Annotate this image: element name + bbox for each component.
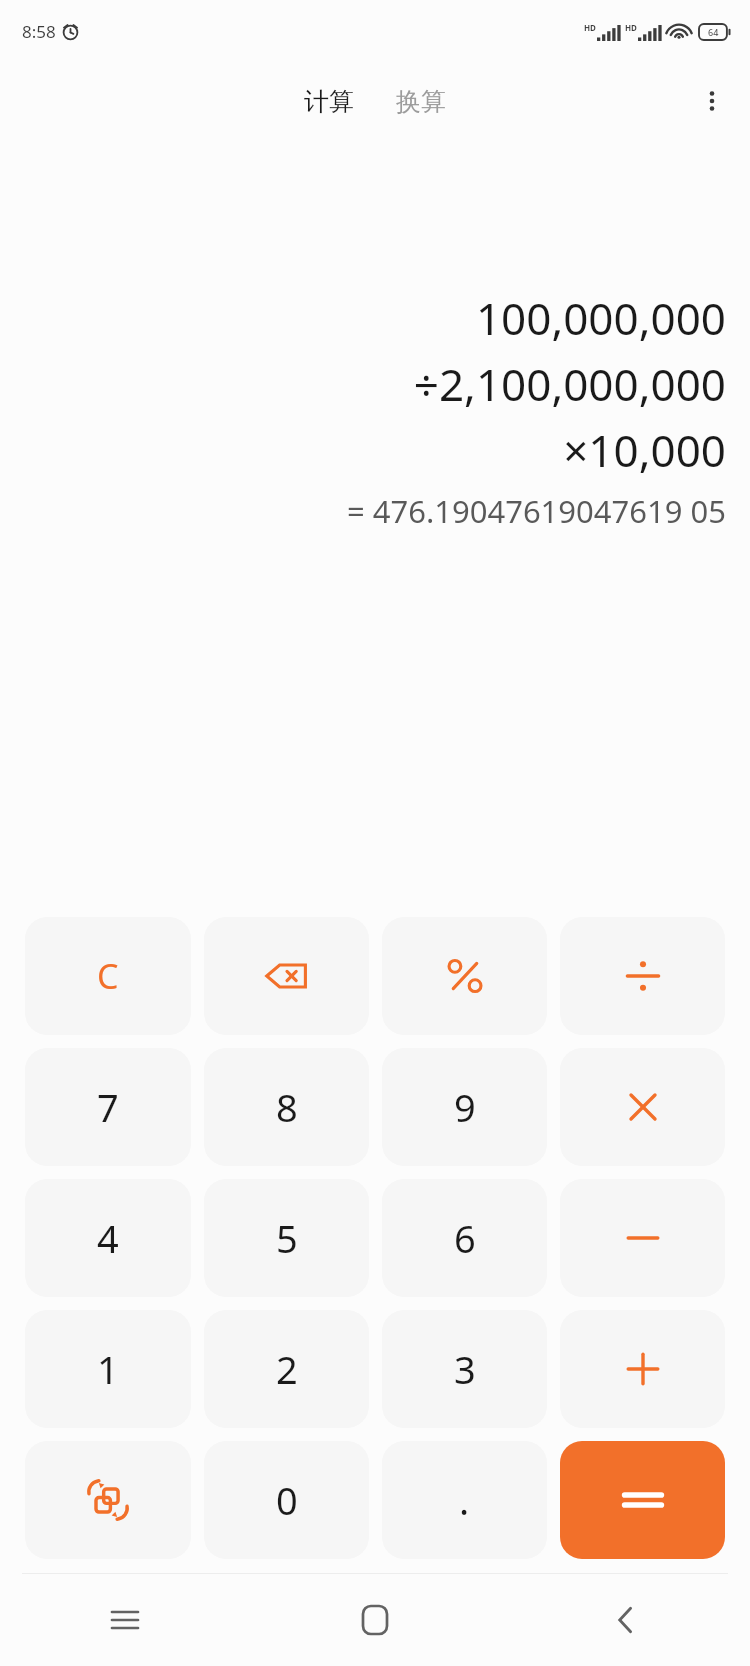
- staticText: HD: [584, 22, 596, 33]
- button[interactable]: Backspace: [204, 917, 369, 1035]
- staticText: 5: [276, 1212, 298, 1264]
- button[interactable]: 4: [25, 1179, 191, 1297]
- button[interactable]: 换算: [388, 80, 454, 123]
- button[interactable]: Home: [250, 1574, 500, 1666]
- button[interactable]: 1: [25, 1310, 191, 1428]
- button[interactable]: Unit converter: [25, 1441, 191, 1559]
- staticText: 4: [97, 1212, 119, 1264]
- staticText: 1: [97, 1343, 119, 1395]
- staticText: ÷2,100,000,000: [413, 354, 726, 414]
- staticText: C: [97, 953, 119, 999]
- staticText: .: [459, 1474, 470, 1526]
- staticText: 0: [276, 1474, 298, 1526]
- button[interactable]: 9: [382, 1048, 547, 1166]
- staticText: 8:58: [22, 20, 56, 43]
- button[interactable]: Divide: [560, 917, 725, 1035]
- button[interactable]: Multiply: [560, 1048, 725, 1166]
- button[interactable]: 计算: [296, 80, 362, 123]
- button[interactable]: Plus: [560, 1310, 725, 1428]
- staticText: 3: [454, 1343, 476, 1395]
- staticText: 8: [276, 1081, 298, 1133]
- button[interactable]: More options: [688, 77, 736, 125]
- staticText: HD: [625, 22, 637, 33]
- staticText: = 476.19047619047619 05: [346, 490, 726, 532]
- button[interactable]: 2: [204, 1310, 369, 1428]
- button[interactable]: .: [382, 1441, 547, 1559]
- staticText: 9: [454, 1081, 476, 1133]
- button[interactable]: Recent apps: [0, 1574, 250, 1666]
- button[interactable]: Back: [500, 1574, 750, 1666]
- button[interactable]: Minus: [560, 1179, 725, 1297]
- button[interactable]: 3: [382, 1310, 547, 1428]
- staticText: 64: [708, 26, 719, 38]
- staticText: 2: [276, 1343, 298, 1395]
- button[interactable]: Percent: [382, 917, 547, 1035]
- staticText: 换算: [396, 86, 446, 117]
- button[interactable]: 6: [382, 1179, 547, 1297]
- staticText: 7: [97, 1081, 119, 1133]
- button[interactable]: Equals: [560, 1441, 725, 1559]
- button[interactable]: 5: [204, 1179, 369, 1297]
- staticText: 6: [454, 1212, 476, 1264]
- button[interactable]: 8: [204, 1048, 369, 1166]
- staticText: 100,000,000: [475, 288, 726, 348]
- staticText: 计算: [304, 86, 354, 117]
- staticText: ×10,000: [563, 420, 726, 480]
- button[interactable]: Clear: [25, 917, 191, 1035]
- button[interactable]: 0: [204, 1441, 369, 1559]
- button[interactable]: 7: [25, 1048, 191, 1166]
